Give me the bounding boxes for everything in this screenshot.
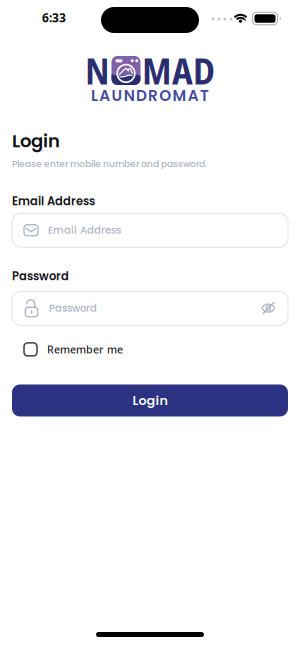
staticText: U [111,85,122,106]
button[interactable]: Password [12,291,288,325]
staticText: Please enter mobile number and password. [12,157,207,170]
button[interactable]: Show password [261,301,288,315]
staticText: A [99,85,110,106]
staticText: N [124,85,135,106]
staticText: Password [12,268,69,284]
staticText: N [85,46,110,95]
staticText: Remember me [47,342,123,356]
staticText: Email Address [48,223,121,237]
staticText: MAD [142,46,215,95]
staticText: O [159,85,171,106]
staticText: T [200,85,209,106]
staticText: Password [49,301,97,315]
staticText: M [172,85,186,106]
staticText: Login [12,128,60,153]
staticText: Login [132,391,167,409]
staticText: R [148,85,158,106]
button[interactable]: Email Address [12,213,288,247]
staticText: Email Address [12,193,95,209]
staticText: A [188,85,199,106]
button[interactable]: Remember me [12,342,123,356]
staticText: 6:33 [42,9,66,25]
staticText: L [91,85,98,106]
button[interactable]: Login [12,384,288,416]
staticText: D [136,85,147,106]
